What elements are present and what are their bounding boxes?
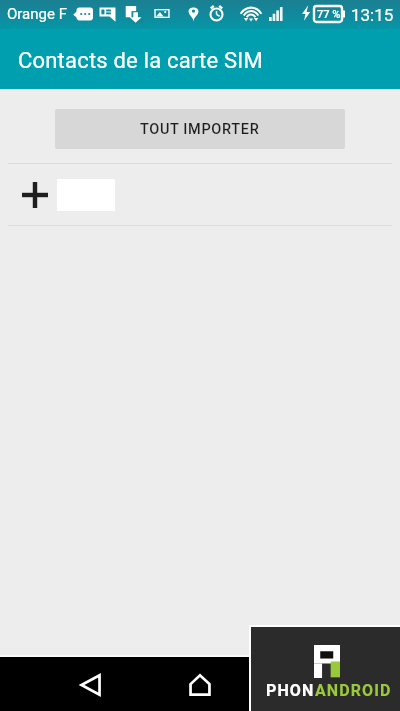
staticText: PHON bbox=[266, 681, 315, 700]
staticText: Orange F bbox=[7, 5, 67, 23]
staticText: 13:15 bbox=[351, 5, 394, 25]
button[interactable] bbox=[0, 164, 400, 225]
button[interactable]: Home bbox=[155, 657, 245, 711]
staticText: ANDROID bbox=[315, 681, 392, 700]
staticText: Contacts de la carte SIM bbox=[18, 48, 263, 74]
staticText: 77 % bbox=[317, 8, 341, 21]
staticText: TOUT IMPORTER bbox=[140, 121, 260, 138]
button[interactable]: Back bbox=[45, 657, 135, 711]
button[interactable]: TOUT IMPORTER bbox=[55, 109, 345, 149]
